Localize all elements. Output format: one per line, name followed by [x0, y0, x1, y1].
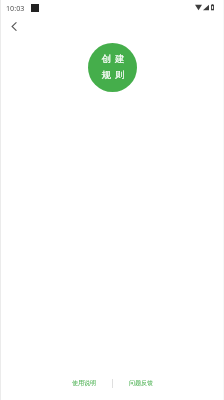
button[interactable]: 问题反馈 [113, 376, 169, 390]
staticText: 创建 规则 [101, 53, 129, 81]
staticText: 问题反馈 [129, 379, 153, 387]
staticText: 使用说明 [72, 379, 96, 387]
staticText: 10:03 [6, 3, 25, 13]
button[interactable]: 创建 规则 [88, 43, 137, 92]
button[interactable]: Back [4, 16, 24, 36]
button[interactable]: 使用说明 [56, 376, 112, 390]
